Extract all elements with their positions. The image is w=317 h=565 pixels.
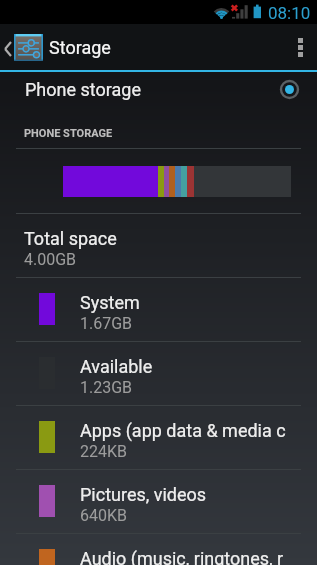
staticText: 08:10 — [268, 3, 311, 23]
staticText: Apps (app data & media c — [80, 420, 286, 441]
button[interactable]: Audio (music, ringtones, r — [0, 534, 317, 565]
staticText: 1.67GB — [80, 314, 133, 333]
button[interactable]: Available — [0, 342, 317, 405]
staticText: 1.23GB — [80, 378, 133, 397]
staticText: PHONE STORAGE — [24, 127, 113, 140]
staticText: System — [80, 292, 140, 313]
staticText: 4.00GB — [24, 250, 77, 269]
staticText: Storage — [49, 37, 111, 58]
button[interactable]: Phone storage — [0, 72, 317, 106]
staticText: 640KB — [80, 506, 127, 525]
button[interactable]: Total space — [0, 214, 317, 277]
staticText: Available — [80, 356, 153, 377]
staticText: Total space — [24, 228, 117, 249]
button[interactable]: Pictures, videos — [0, 470, 317, 533]
button[interactable]: More options — [283, 24, 317, 70]
staticText: Phone storage — [25, 79, 141, 100]
button[interactable]: System — [0, 278, 317, 341]
staticText: 224KB — [80, 442, 127, 461]
staticText: Pictures, videos — [80, 484, 207, 505]
button[interactable]: Apps (app data & media c — [0, 406, 317, 469]
button[interactable]: Navigate up — [0, 24, 43, 70]
staticText: Audio (music, ringtones, r — [80, 548, 284, 565]
